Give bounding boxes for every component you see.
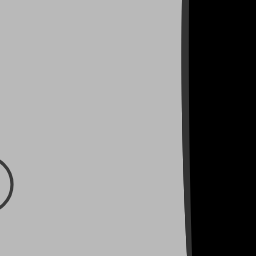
button[interactable]: Magnified panel [0,0,256,256]
